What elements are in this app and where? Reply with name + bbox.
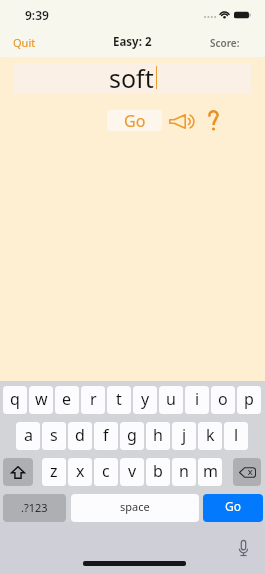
staticText: w (35, 388, 48, 410)
button[interactable]: t (107, 386, 131, 414)
button[interactable]: Go (203, 494, 263, 522)
button[interactable]: w (29, 386, 53, 414)
button[interactable]: o (211, 386, 235, 414)
staticText: z (50, 460, 58, 482)
button[interactable]: s (42, 422, 66, 450)
staticText: g (127, 424, 137, 446)
staticText: i (195, 388, 200, 410)
button[interactable]: r (81, 386, 105, 414)
button[interactable]: p (237, 386, 261, 414)
button[interactable]: v (120, 458, 144, 486)
button[interactable]: soft (14, 63, 251, 94)
staticText: Go (124, 110, 146, 131)
staticText: space (120, 499, 150, 514)
staticText: o (218, 388, 228, 410)
staticText: j (182, 424, 187, 446)
button[interactable]: Help (205, 108, 221, 132)
staticText: n (179, 460, 189, 482)
staticText: k (206, 424, 215, 446)
button[interactable]: z (42, 458, 66, 486)
staticText: l (234, 424, 239, 446)
staticText: y (141, 388, 150, 410)
button[interactable]: Dictation (234, 538, 252, 558)
button[interactable]: h (146, 422, 170, 450)
staticText: m (203, 460, 218, 482)
button[interactable]: g (120, 422, 144, 450)
button[interactable]: i (185, 386, 209, 414)
button[interactable]: space (71, 494, 199, 522)
button[interactable]: j (172, 422, 196, 450)
button[interactable]: m (198, 458, 222, 486)
staticText: v (128, 460, 137, 482)
button[interactable]: e (55, 386, 79, 414)
button[interactable]: c (94, 458, 118, 486)
staticText: q (10, 388, 20, 410)
button[interactable]: Backspace (233, 458, 261, 486)
staticText: Easy: 2 (113, 34, 152, 50)
button[interactable]: q (3, 386, 27, 414)
button[interactable]: y (133, 386, 157, 414)
staticText: u (166, 388, 176, 410)
button[interactable]: Shift (3, 458, 33, 486)
staticText: d (75, 424, 85, 446)
staticText: b (153, 460, 163, 482)
button[interactable]: n (172, 458, 196, 486)
button[interactable]: d (68, 422, 92, 450)
button[interactable]: u (159, 386, 183, 414)
button[interactable]: Go (107, 110, 162, 131)
staticText: x (76, 460, 85, 482)
staticText: a (24, 424, 33, 446)
button[interactable]: k (198, 422, 222, 450)
staticText: p (244, 388, 254, 410)
staticText: 9:39 (25, 7, 49, 23)
staticText: soft (109, 61, 154, 92)
staticText: r (90, 388, 97, 410)
staticText: t (116, 388, 122, 410)
staticText: Go (225, 498, 241, 514)
staticText: c (102, 460, 110, 482)
button[interactable]: Quit (0, 29, 113, 55)
button[interactable]: Speak word (169, 113, 196, 129)
button[interactable]: l (224, 422, 248, 450)
button[interactable]: f (94, 422, 118, 450)
staticText: Quit (13, 35, 36, 50)
staticText: f (103, 424, 109, 446)
button[interactable]: x (68, 458, 92, 486)
staticText: Score: (210, 36, 240, 50)
button[interactable]: b (146, 458, 170, 486)
staticText: e (62, 388, 72, 410)
button[interactable]: .?123 (3, 494, 66, 522)
staticText: s (50, 424, 58, 446)
button[interactable]: a (16, 422, 40, 450)
staticText: h (153, 424, 163, 446)
staticText: .?123 (21, 500, 48, 515)
